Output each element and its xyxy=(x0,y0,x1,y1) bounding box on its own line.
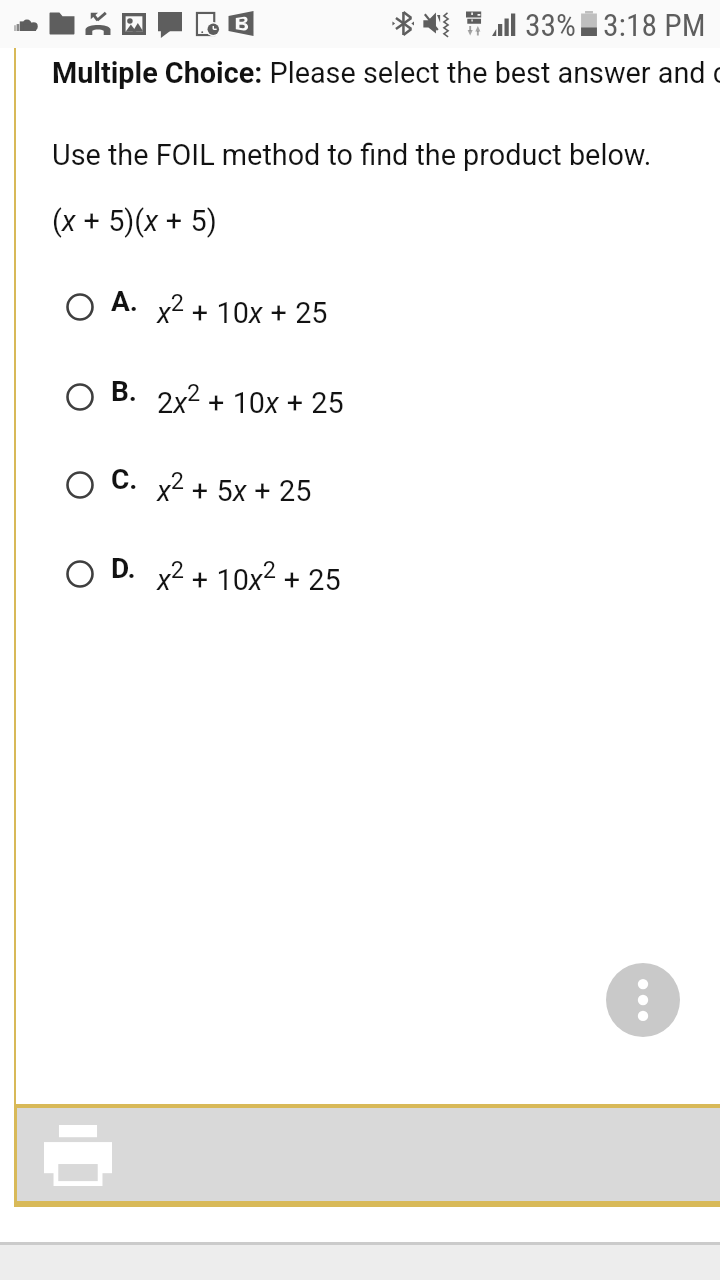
staticText: x2 + 10x + 25 xyxy=(157,289,328,330)
staticText: Use the FOIL method to find the product … xyxy=(52,138,652,172)
staticText: D. xyxy=(111,552,136,585)
staticText: C. xyxy=(111,463,138,496)
button[interactable]: B. xyxy=(0,363,720,431)
button[interactable]: C. xyxy=(0,451,720,519)
staticText: Multiple Choice: Please select the best … xyxy=(52,56,720,90)
staticText: 33% xyxy=(525,7,577,44)
staticText: A. xyxy=(111,285,138,318)
button[interactable]: More options xyxy=(606,963,680,1037)
staticText: x2 + 10x2 + 25 xyxy=(157,556,341,597)
staticText: 2x2 + 10x + 25 xyxy=(157,379,344,420)
staticText: x2 + 5x + 25 xyxy=(157,467,312,508)
button[interactable]: D. xyxy=(0,540,720,608)
button[interactable]: Print xyxy=(14,1104,720,1207)
staticText: 3:18 PM xyxy=(603,7,706,44)
button[interactable]: A. xyxy=(0,273,720,341)
staticText: (x + 5)(x + 5) xyxy=(52,204,217,238)
staticText: B. xyxy=(111,375,137,408)
